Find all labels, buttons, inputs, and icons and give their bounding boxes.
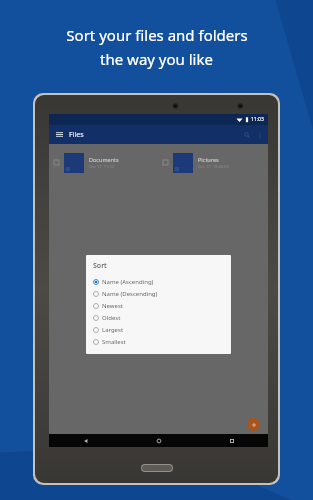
button[interactable]: Add	[247, 418, 260, 431]
staticText: Files	[69, 130, 84, 140]
staticText: Pictures	[198, 156, 219, 163]
staticText: Documents	[89, 156, 119, 163]
staticText: Sort your files and folders	[66, 25, 248, 45]
button[interactable]: Smallest	[93, 336, 224, 348]
staticText: Sort	[93, 261, 107, 271]
button[interactable]: Recent apps	[195, 434, 268, 447]
button[interactable]: Oldest	[93, 312, 224, 324]
staticText: Name (Descending)	[102, 290, 158, 298]
button[interactable]: Newest	[93, 300, 224, 312]
staticText: Oldest	[102, 314, 121, 322]
staticText: Largest	[102, 326, 124, 334]
staticText: Dec 17 11:03	[89, 164, 115, 169]
staticText: Name (Ascending)	[102, 278, 154, 286]
staticText: Smallest	[102, 338, 126, 346]
button[interactable]: Documents	[49, 144, 158, 181]
staticText: Dec 17 10:45:00	[198, 164, 229, 169]
button[interactable]: Home button	[142, 465, 172, 471]
button[interactable]: Name (Ascending)	[93, 276, 224, 288]
button[interactable]: Pictures	[158, 144, 268, 181]
button[interactable]: Back	[49, 434, 122, 447]
button[interactable]: Search	[240, 128, 253, 141]
staticText: Newest	[102, 302, 123, 310]
staticText: the way you like	[100, 49, 213, 69]
button[interactable]: Largest	[93, 324, 224, 336]
button[interactable]: Home	[122, 434, 195, 447]
staticText: 11:03	[251, 116, 264, 123]
button[interactable]: Open navigation menu	[53, 128, 66, 141]
button[interactable]: Name (Descending)	[93, 288, 224, 300]
